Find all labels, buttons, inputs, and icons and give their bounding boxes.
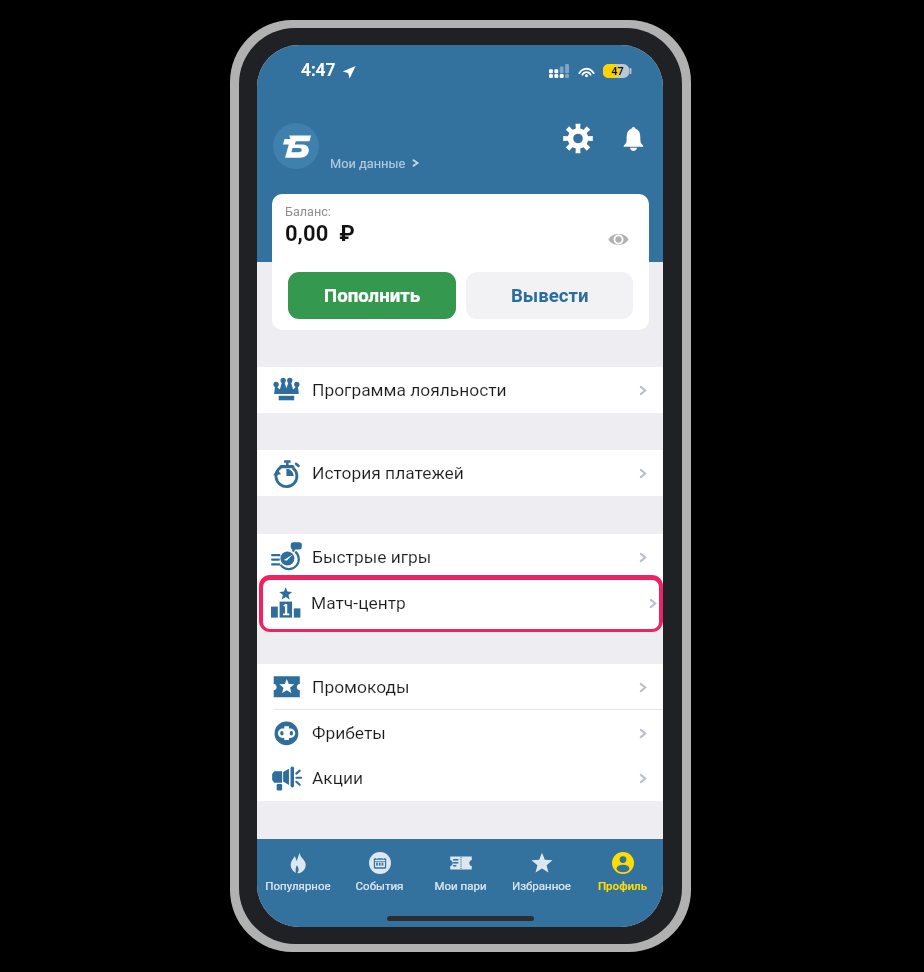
button[interactable]: Profile avatar	[273, 123, 319, 169]
staticText: Вывести	[511, 285, 589, 307]
staticText: 47	[603, 65, 632, 79]
staticText: Матч-центр	[311, 593, 406, 613]
staticText: Мои пари	[420, 879, 501, 892]
button[interactable]: Акции	[257, 755, 663, 801]
button[interactable]: Промокоды	[257, 664, 663, 710]
button[interactable]: Программа лояльности	[257, 367, 663, 413]
staticText: Популярное	[257, 879, 339, 892]
staticText: Промокоды	[312, 677, 410, 697]
button[interactable]: Матч-центр	[263, 580, 663, 626]
staticText: Пополнить	[324, 285, 421, 307]
button[interactable]: Пополнить	[288, 272, 456, 319]
button[interactable]: Избранное	[501, 839, 582, 901]
staticText: 0,00 ₽	[285, 221, 355, 247]
staticText: Баланс:	[285, 204, 331, 219]
staticText: Быстрые игры	[312, 547, 432, 567]
button[interactable]: Вывести	[466, 272, 633, 319]
staticText: Избранное	[501, 879, 582, 892]
staticText: Профиль	[582, 879, 663, 892]
button[interactable]: Мои данные	[330, 151, 419, 175]
staticText: История платежей	[312, 463, 464, 483]
button[interactable]: Фрибеты	[257, 710, 663, 756]
staticText: Фрибеты	[312, 723, 386, 743]
button[interactable]: Популярное	[257, 839, 339, 901]
button[interactable]: Профиль	[582, 839, 663, 901]
button[interactable]: Notifications	[615, 120, 652, 157]
button[interactable]: Toggle balance visibility	[604, 225, 632, 253]
button[interactable]: Settings	[559, 120, 596, 157]
button[interactable]: Мои пари	[420, 839, 501, 901]
staticText: Мои данные	[330, 156, 406, 171]
button[interactable]: История платежей	[257, 450, 663, 496]
staticText: Программа лояльности	[312, 380, 507, 400]
button[interactable]: Быстрые игры	[257, 534, 663, 580]
staticText: Акции	[312, 768, 364, 788]
staticText: 4:47	[301, 60, 336, 81]
button[interactable]: События	[339, 839, 420, 901]
staticText: События	[339, 879, 420, 892]
